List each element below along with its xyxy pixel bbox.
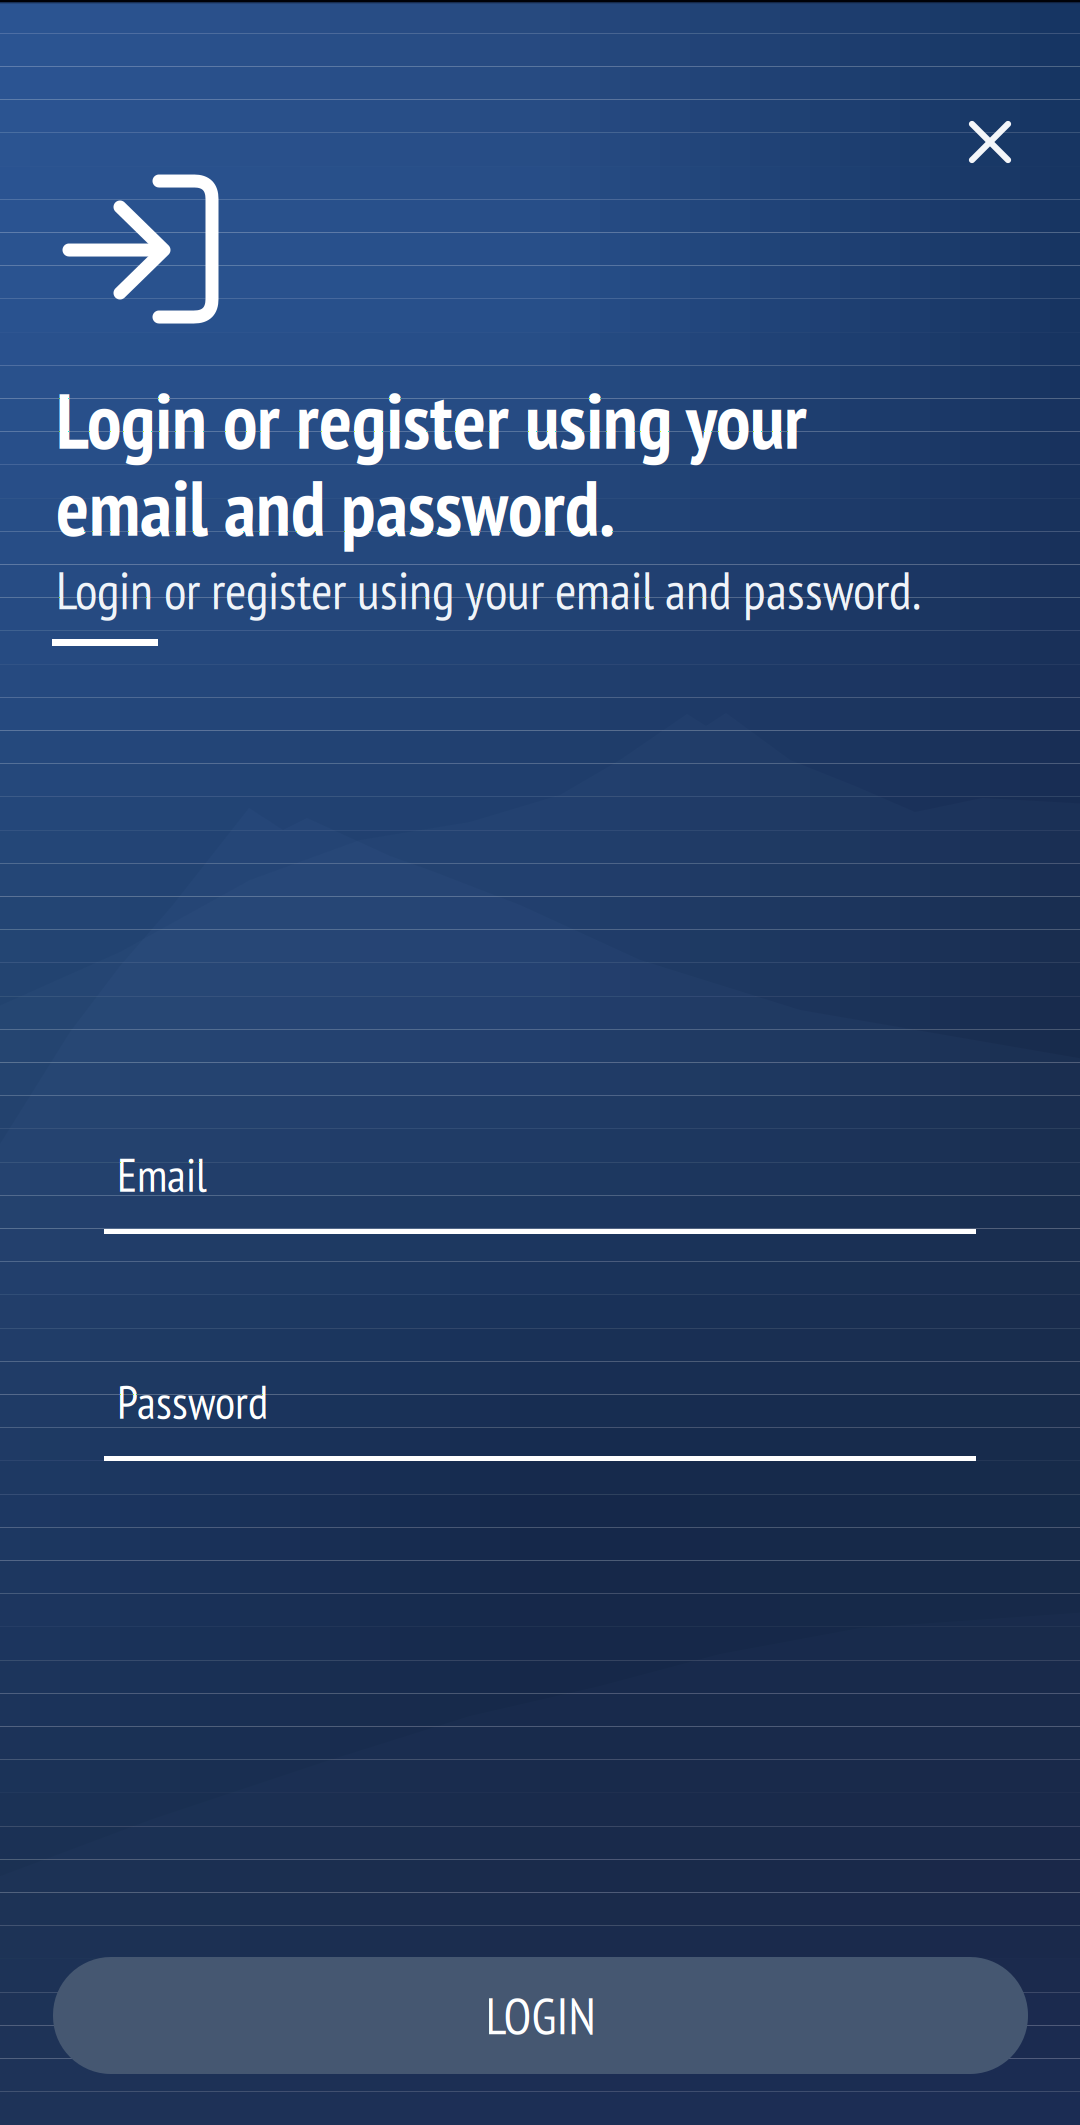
staticText: Login or register using your email and p… [56,556,921,624]
button[interactable]: LOGIN [53,1957,1028,2074]
staticText: Email [117,1144,207,1205]
button[interactable]: Close [935,87,1045,197]
staticText: LOGIN [485,1983,595,2048]
staticText: Login or register using your [56,370,807,470]
staticText: Password [117,1371,268,1432]
staticText: email and password. [56,457,615,557]
